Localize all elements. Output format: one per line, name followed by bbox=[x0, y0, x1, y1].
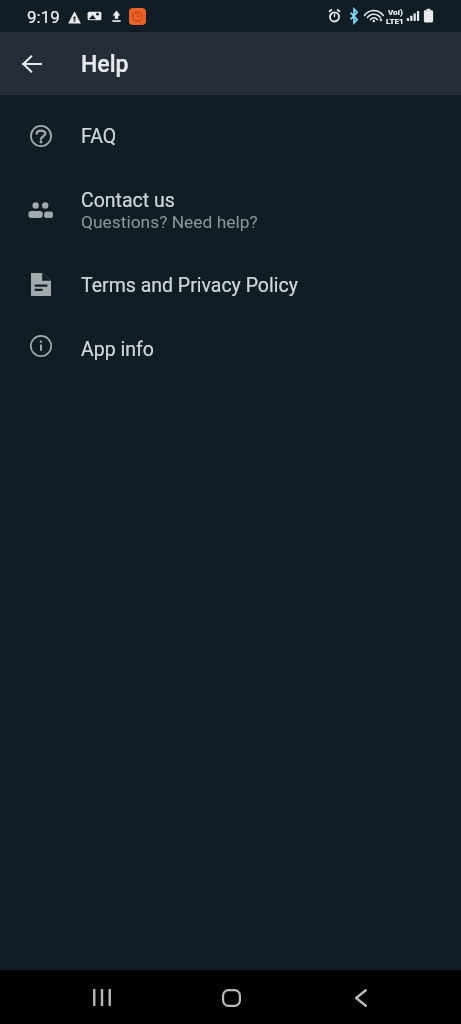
staticText: Contact us bbox=[81, 189, 175, 212]
button[interactable]: Terms and Privacy Policy bbox=[0, 253, 461, 318]
staticText: App info bbox=[81, 338, 154, 361]
staticText: Terms and Privacy Policy bbox=[81, 274, 298, 297]
staticText: Help bbox=[81, 51, 129, 78]
staticText: FAQ bbox=[81, 125, 117, 148]
button[interactable]: Contact us bbox=[0, 167, 461, 253]
button[interactable]: App info bbox=[0, 318, 461, 381]
staticText: LTE1 bbox=[386, 17, 404, 26]
button[interactable]: Home bbox=[208, 974, 255, 1021]
staticText: Questions? Need help? bbox=[81, 212, 258, 232]
button[interactable]: Recent apps bbox=[78, 974, 125, 1021]
button[interactable]: Back bbox=[337, 974, 384, 1021]
staticText: VoI) bbox=[388, 8, 403, 17]
button[interactable]: Navigate up bbox=[10, 42, 54, 86]
staticText: 9:19 bbox=[27, 7, 60, 27]
button[interactable]: FAQ bbox=[0, 106, 461, 167]
